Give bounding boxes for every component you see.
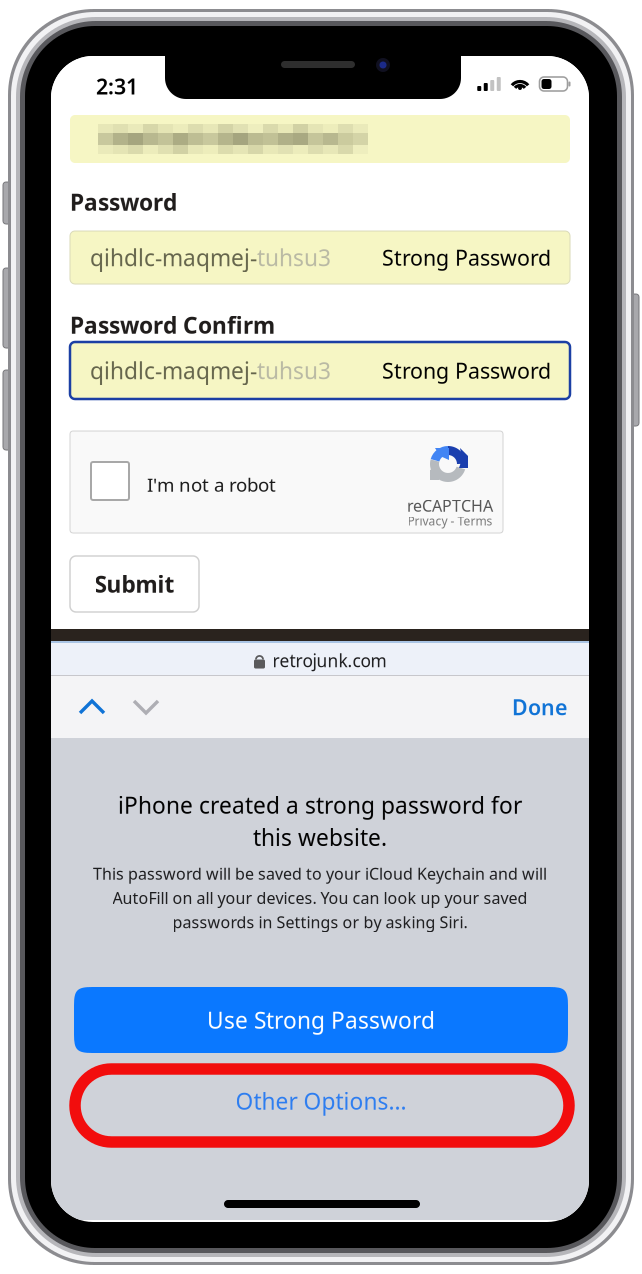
button[interactable]: Next field [119,676,173,738]
staticText: Other Options... [235,1086,406,1116]
staticText: Submit [94,569,174,599]
staticText: qihdlc-maqmej- [90,355,257,385]
staticText: tuhsu3 [257,242,331,272]
staticText: Use Strong Password [207,1005,435,1035]
staticText: reCAPTCHA [407,495,493,516]
button[interactable]: Done [512,676,589,738]
staticText: AutoFill on all your devices. You can lo… [112,887,527,908]
staticText: this website. [253,822,387,852]
staticText: retrojunk.com [272,649,386,672]
staticText: Done [512,693,567,721]
button[interactable]: Previous field [65,676,119,738]
staticText: 2:31 [96,72,138,100]
staticText: Password [70,187,177,217]
staticText: Strong Password [382,243,551,272]
staticText: tuhsu3 [257,355,331,385]
button[interactable]: Submit [70,556,199,612]
staticText: I'm not a robot [147,472,276,497]
staticText: Password Confirm [70,310,275,340]
staticText: This password will be saved to your iClo… [93,863,547,884]
button[interactable]: Use Strong Password [74,987,568,1053]
staticText: qihdlc-maqmej- [90,242,257,272]
button[interactable]: Other Options... [74,1068,568,1134]
staticText: iPhone created a strong password for [118,790,522,820]
staticText: Strong Password [382,356,551,385]
staticText: passwords in Settings or by asking Siri. [172,911,467,933]
staticText: Privacy - Terms [407,513,492,529]
